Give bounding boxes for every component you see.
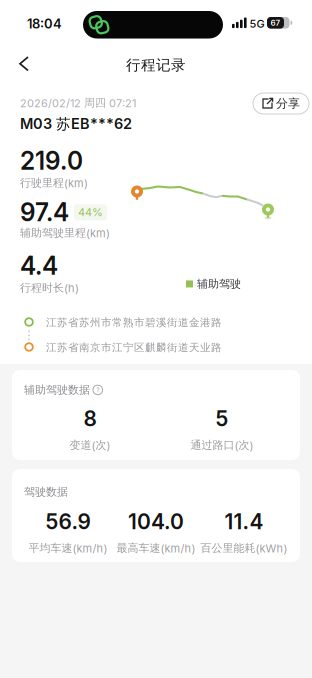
- staticText: 219.0: [20, 146, 83, 176]
- staticText: 行程时长(h): [20, 281, 79, 295]
- staticText: 67: [270, 18, 280, 28]
- staticText: 分享: [276, 96, 300, 111]
- staticText: 行驶里程(km): [20, 176, 88, 190]
- staticText: 江苏省南京市江宁区麒麟街道天业路: [46, 341, 222, 354]
- staticText: 8: [83, 406, 96, 431]
- staticText: 11.4: [224, 509, 263, 534]
- staticText: 辅助驾驶: [197, 277, 241, 291]
- staticText: 江苏省苏州市常熟市碧溪街道金港路: [46, 316, 222, 329]
- staticText: ?: [96, 386, 99, 394]
- staticText: M03 苏EB***62: [20, 115, 132, 133]
- staticText: 最高车速(km/h): [116, 541, 195, 555]
- staticText: 行程记录: [126, 56, 186, 74]
- staticText: 104.0: [128, 509, 184, 534]
- staticText: 变道(次): [69, 438, 110, 452]
- staticText: 44%: [78, 206, 103, 219]
- button[interactable]: Back: [0, 0, 40, 78]
- button[interactable]: 分享: [253, 93, 309, 114]
- staticText: 2026/02/12 周四 07:21: [20, 96, 136, 110]
- staticText: 97.4: [20, 197, 69, 227]
- staticText: 驾驶数据: [24, 485, 68, 499]
- staticText: 通过路口(次): [190, 438, 253, 452]
- staticText: 56.9: [45, 509, 90, 534]
- staticText: 百公里能耗(kWh): [200, 541, 287, 555]
- staticText: 辅助驾驶数据: [24, 383, 90, 397]
- staticText: 辅助驾驶里程(km): [20, 226, 110, 240]
- staticText: 4.4: [20, 251, 58, 281]
- staticText: 18:04: [27, 16, 62, 32]
- staticText: 5G: [249, 17, 264, 30]
- button[interactable]: 辅助驾驶数据说明: [93, 385, 102, 395]
- staticText: 5: [215, 406, 228, 431]
- staticText: 平均车速(km/h): [28, 541, 107, 555]
